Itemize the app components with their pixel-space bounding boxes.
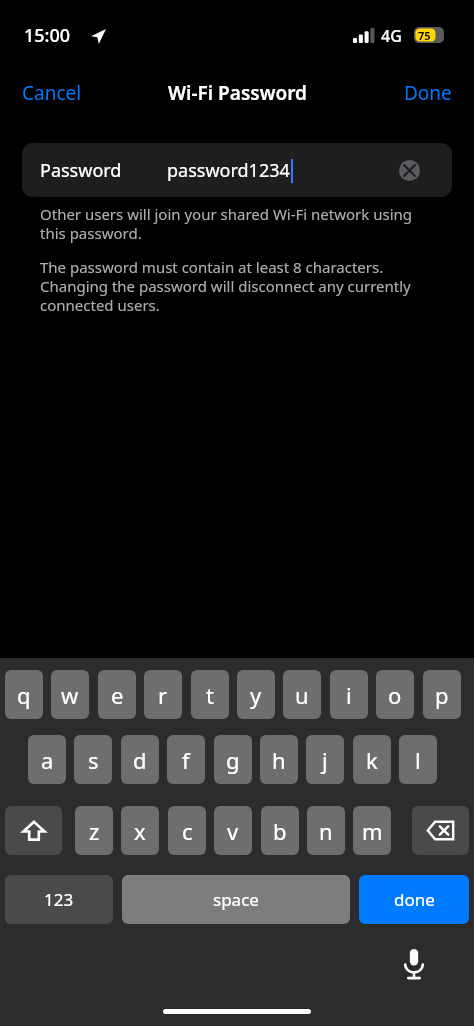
button[interactable]: x — [121, 806, 159, 855]
button[interactable]: k — [353, 735, 391, 784]
button[interactable]: q — [5, 670, 43, 719]
button[interactable]: Clear text — [394, 155, 424, 185]
staticText: Done — [404, 80, 452, 106]
button[interactable]: y — [237, 670, 275, 719]
button[interactable]: o — [376, 670, 414, 719]
staticText: Cancel — [22, 80, 82, 106]
button[interactable]: m — [353, 806, 391, 855]
button[interactable]: Done — [382, 74, 474, 112]
staticText: w — [61, 680, 79, 710]
staticText: o — [388, 680, 402, 710]
staticText: space — [213, 888, 259, 911]
staticText: 123 — [44, 888, 74, 911]
staticText: Other users will join your shared Wi-Fi … — [40, 204, 430, 243]
staticText: password1234 — [167, 158, 290, 183]
staticText: 4G — [381, 25, 402, 47]
button[interactable]: v — [214, 806, 252, 855]
staticText: e — [111, 680, 124, 710]
button[interactable]: Dictate — [393, 943, 435, 985]
button[interactable]: a — [28, 735, 66, 784]
button[interactable]: Cancel — [0, 74, 104, 112]
button[interactable]: space — [122, 875, 350, 924]
button[interactable]: d — [121, 735, 159, 784]
staticText: The password must contain at least 8 cha… — [40, 257, 415, 315]
staticText: q — [17, 680, 31, 710]
button[interactable]: Shift — [5, 806, 62, 855]
staticText: 75 — [418, 28, 431, 43]
button[interactable]: s — [74, 735, 112, 784]
button[interactable]: c — [168, 806, 206, 855]
staticText: t — [206, 680, 214, 710]
staticText: c — [182, 816, 193, 846]
staticText: 15:00 — [24, 23, 71, 48]
button[interactable]: b — [261, 806, 299, 855]
button[interactable]: t — [191, 670, 229, 719]
button[interactable]: w — [51, 670, 89, 719]
staticText: Wi-Fi Password — [168, 80, 307, 106]
button[interactable]: f — [167, 735, 205, 784]
staticText: y — [250, 680, 262, 710]
button[interactable]: Backspace — [412, 806, 469, 855]
button[interactable]: p — [423, 670, 461, 719]
staticText: j — [322, 745, 328, 775]
staticText: s — [88, 745, 99, 775]
button[interactable]: 123 — [5, 875, 113, 924]
staticText: z — [89, 816, 100, 846]
button[interactable]: h — [260, 735, 298, 784]
staticText: i — [346, 680, 352, 710]
staticText: done — [394, 888, 435, 911]
button[interactable]: Password — [22, 143, 452, 197]
button[interactable]: e — [98, 670, 136, 719]
staticText: n — [319, 816, 333, 846]
staticText: f — [182, 745, 190, 775]
button[interactable]: n — [307, 806, 345, 855]
staticText: r — [158, 680, 168, 710]
button[interactable]: u — [283, 670, 321, 719]
staticText: a — [41, 745, 54, 775]
button[interactable]: r — [144, 670, 182, 719]
staticText: b — [273, 816, 287, 846]
staticText: Password — [40, 158, 122, 183]
staticText: d — [133, 745, 147, 775]
staticText: k — [366, 745, 378, 775]
staticText: x — [134, 816, 146, 846]
staticText: h — [272, 745, 286, 775]
staticText: m — [362, 816, 383, 846]
button[interactable]: i — [330, 670, 368, 719]
staticText: v — [227, 816, 239, 846]
button[interactable]: g — [214, 735, 252, 784]
button[interactable]: j — [306, 735, 344, 784]
staticText: p — [435, 680, 449, 710]
staticText: l — [415, 745, 421, 775]
button[interactable]: l — [399, 735, 437, 784]
staticText: g — [226, 745, 240, 775]
button[interactable]: z — [75, 806, 113, 855]
staticText: u — [295, 680, 309, 710]
button[interactable]: done — [359, 875, 469, 924]
